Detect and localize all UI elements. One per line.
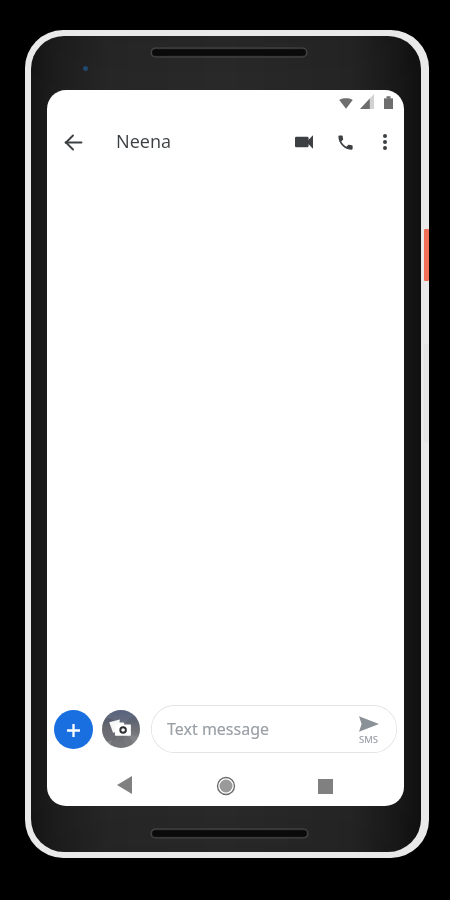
staticText: SMS (359, 733, 379, 746)
button[interactable]: Add attachment (54, 710, 93, 749)
button[interactable]: Call (323, 123, 367, 161)
button[interactable]: Back (100, 766, 148, 806)
button[interactable]: Recent apps (301, 766, 349, 806)
button[interactable]: Video call (284, 123, 323, 161)
button[interactable]: Back (53, 122, 93, 162)
staticText: Text message (167, 718, 270, 740)
button[interactable]: Camera (102, 710, 140, 748)
button[interactable]: More options (367, 123, 403, 161)
button[interactable]: Text message (151, 705, 397, 753)
button[interactable]: Home (202, 766, 250, 806)
staticText: Neena (116, 129, 172, 154)
